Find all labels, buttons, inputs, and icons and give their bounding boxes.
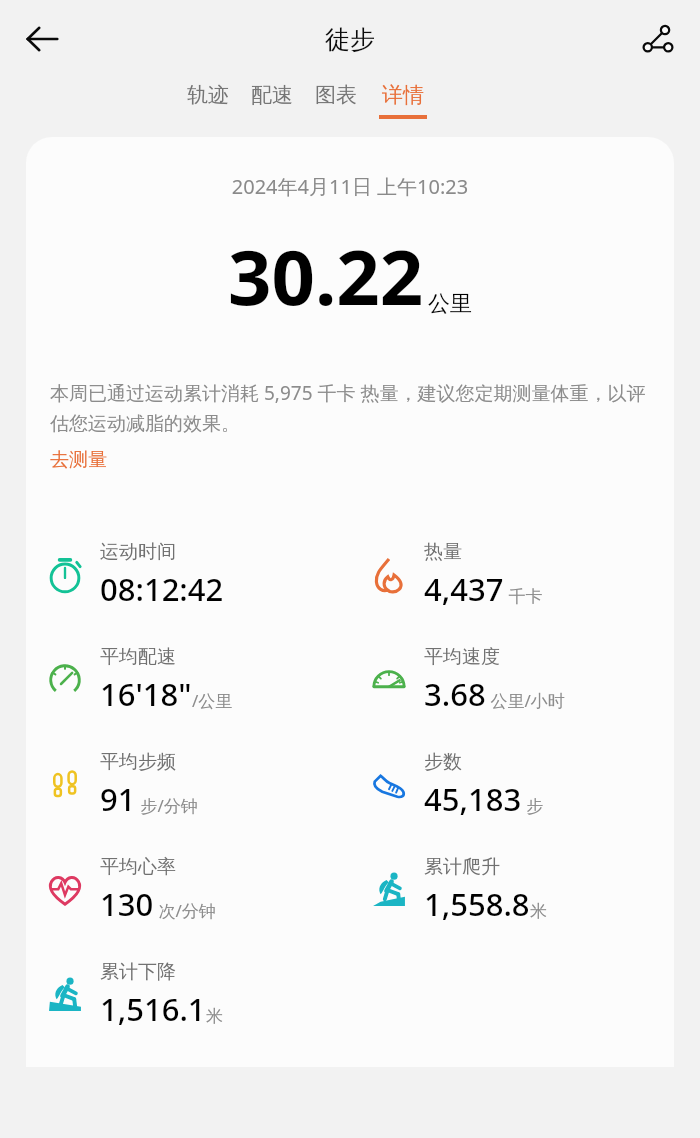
staticText: 配速: [251, 82, 293, 108]
staticText: 详情: [382, 82, 424, 108]
button[interactable]: 去测量: [50, 448, 107, 472]
button[interactable]: 平均配速: [26, 627, 350, 732]
button[interactable]: 累计爬升: [350, 837, 674, 942]
staticText: 步数: [424, 750, 462, 774]
staticText: 运动时间: [100, 540, 176, 564]
staticText: 千卡: [504, 584, 543, 607]
staticText: 累计爬升: [424, 855, 500, 879]
staticText: 45,183: [424, 778, 522, 820]
button[interactable]: 详情: [368, 78, 438, 123]
button[interactable]: 平均步频: [26, 732, 350, 837]
button[interactable]: 运动时间: [26, 522, 350, 627]
staticText: 热量: [424, 540, 462, 564]
staticText: 91: [100, 778, 136, 820]
button[interactable]: 累计下降: [26, 942, 350, 1047]
button[interactable]: Back: [14, 11, 70, 67]
staticText: 3.68: [424, 673, 486, 715]
staticText: 4,437: [424, 568, 504, 610]
button[interactable]: 步数: [350, 732, 674, 837]
button[interactable]: Share: [630, 11, 686, 67]
staticText: 本周已通过运动累计消耗 5,975 千卡 热量，建议您定期测量体重，以评估您运动…: [50, 380, 650, 436]
button[interactable]: 图表: [304, 78, 368, 119]
button[interactable]: 平均速度: [350, 627, 674, 732]
staticText: 08:12:42: [100, 568, 224, 610]
button[interactable]: 平均心率: [26, 837, 350, 942]
staticText: 图表: [315, 82, 357, 108]
staticText: 平均心率: [100, 855, 176, 879]
staticText: 130: [100, 883, 154, 925]
button[interactable]: 轨迹: [176, 78, 240, 119]
staticText: 2024年4月11日 上午10:23: [26, 173, 674, 200]
staticText: 16'18": [100, 673, 192, 715]
staticText: 步: [522, 794, 544, 817]
staticText: 平均步频: [100, 750, 176, 774]
staticText: 累计下降: [100, 960, 176, 984]
staticText: 米: [530, 901, 547, 922]
staticText: 公里/小时: [486, 689, 565, 712]
staticText: 次/分钟: [154, 899, 216, 922]
staticText: 平均速度: [424, 645, 500, 669]
staticText: 平均配速: [100, 645, 176, 669]
staticText: 轨迹: [187, 82, 229, 108]
staticText: 公里: [428, 290, 472, 318]
staticText: 去测量: [50, 448, 107, 472]
staticText: 30.22: [228, 224, 424, 328]
staticText: 步/分钟: [136, 794, 198, 817]
staticText: /公里: [192, 689, 233, 712]
staticText: 徒步: [325, 24, 375, 55]
staticText: 米: [206, 1006, 223, 1027]
button[interactable]: 热量: [350, 522, 674, 627]
staticText: 1,516.1: [100, 988, 206, 1030]
button[interactable]: 配速: [240, 78, 304, 119]
staticText: 1,558.8: [424, 883, 530, 925]
